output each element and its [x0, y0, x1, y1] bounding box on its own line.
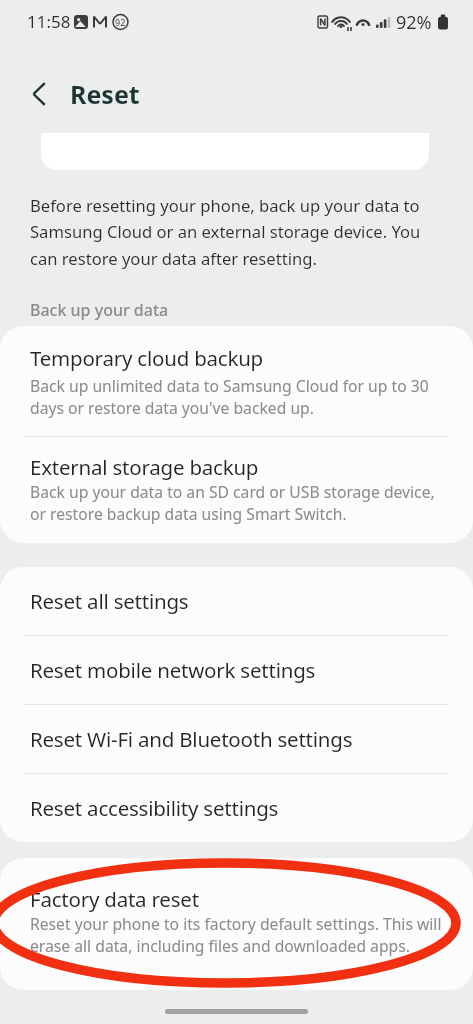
staticText: Before resetting your phone, back up you… [30, 194, 443, 270]
staticText: Reset your phone to its factory default … [30, 913, 443, 957]
button[interactable]: Reset all settings [0, 567, 473, 635]
staticText: Back up your data [30, 299, 169, 321]
button[interactable]: Reset accessibility settings [0, 774, 473, 842]
staticText: Reset Wi-Fi and Bluetooth settings [30, 726, 353, 753]
staticText: External storage backup [30, 454, 259, 481]
staticText: Back up your data to an SD card or USB s… [30, 481, 443, 525]
staticText: Reset all settings [30, 588, 189, 615]
button[interactable]: Reset Wi-Fi and Bluetooth settings [0, 705, 473, 773]
button[interactable]: Reset mobile network settings [0, 636, 473, 704]
staticText: Reset mobile network settings [30, 657, 316, 684]
staticText: Reset [70, 77, 140, 111]
staticText: 11:58 [27, 10, 71, 33]
staticText: Reset accessibility settings [30, 795, 279, 822]
button[interactable]: Factory data reset [0, 858, 473, 990]
button[interactable]: External storage backup [0, 437, 473, 543]
button[interactable]: Temporary cloud backup [0, 326, 473, 436]
staticText: 92% [396, 10, 432, 35]
staticText: 92 [115, 16, 126, 28]
button[interactable]: Back [17, 72, 61, 116]
staticText: Temporary cloud backup [30, 345, 263, 372]
staticText: Back up unlimited data to Samsung Cloud … [30, 375, 443, 419]
staticText: Factory data reset [30, 886, 199, 913]
